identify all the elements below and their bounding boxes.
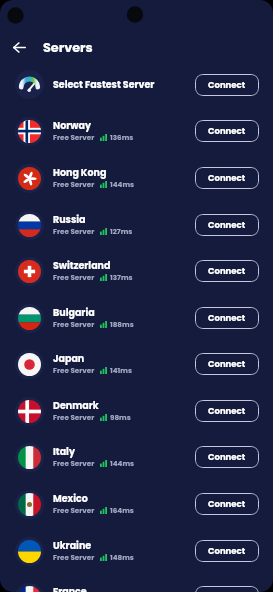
button[interactable]: Connect xyxy=(195,353,259,375)
staticText: Italy xyxy=(53,445,75,458)
staticText: 127ms xyxy=(110,226,133,236)
button[interactable]: Connect xyxy=(195,167,259,189)
staticText: Switzerland xyxy=(53,259,111,272)
staticText: Free Server xyxy=(53,505,95,515)
staticText: Connect xyxy=(208,358,246,370)
button[interactable]: Bulgaria xyxy=(0,294,273,341)
button[interactable]: Switzerland xyxy=(0,247,273,294)
button[interactable]: France xyxy=(0,573,273,592)
staticText: Connect xyxy=(208,79,246,91)
staticText: 141ms xyxy=(110,365,132,375)
button[interactable]: Mexico xyxy=(0,480,273,527)
staticText: Norway xyxy=(53,119,91,132)
staticText: Free Server xyxy=(53,412,95,422)
button[interactable]: Connect xyxy=(195,446,259,468)
button[interactable]: Hong Kong xyxy=(0,154,273,201)
staticText: Select Fastest Server xyxy=(53,78,155,91)
staticText: Ukraine xyxy=(53,539,92,552)
staticText: Free Server xyxy=(53,458,95,468)
button[interactable]: Select Fastest Server xyxy=(0,61,273,108)
staticText: Connect xyxy=(208,125,246,137)
button[interactable]: Connect xyxy=(195,260,259,282)
staticText: Free Server xyxy=(53,552,95,562)
staticText: Connect xyxy=(208,172,246,184)
button[interactable]: Connect xyxy=(195,120,259,142)
staticText: 98ms xyxy=(110,412,131,422)
button[interactable]: Russia xyxy=(0,201,273,248)
button[interactable]: Connect xyxy=(195,307,259,329)
staticText: 137ms xyxy=(110,272,133,282)
button[interactable]: Ukraine xyxy=(0,527,273,574)
button[interactable]: Connect xyxy=(195,74,259,96)
staticText: 144ms xyxy=(110,458,135,468)
staticText: Connect xyxy=(208,451,246,463)
staticText: Free Server xyxy=(53,365,95,375)
staticText: Free Server xyxy=(53,319,95,329)
button[interactable]: Back xyxy=(6,34,32,60)
button[interactable]: Connect xyxy=(195,214,259,236)
staticText: Hong Kong xyxy=(53,166,107,179)
button[interactable]: Norway xyxy=(0,107,273,154)
staticText: 188ms xyxy=(110,319,134,329)
staticText: Connect xyxy=(208,265,246,277)
button[interactable]: Connect xyxy=(195,586,259,592)
staticText: Free Server xyxy=(53,226,95,236)
staticText: Connect xyxy=(208,498,246,510)
staticText: 148ms xyxy=(110,552,134,562)
staticText: Connect xyxy=(208,405,246,417)
staticText: Free Server xyxy=(53,272,95,282)
staticText: Servers xyxy=(43,39,93,57)
button[interactable]: Denmark xyxy=(0,387,273,434)
staticText: Mexico xyxy=(53,492,88,505)
button[interactable]: Italy xyxy=(0,433,273,480)
staticText: 164ms xyxy=(110,505,134,515)
staticText: 136ms xyxy=(110,132,134,142)
staticText: Connect xyxy=(208,312,246,324)
button[interactable]: Connect xyxy=(195,540,259,562)
staticText: Japan xyxy=(53,352,85,365)
staticText: Connect xyxy=(208,545,246,557)
staticText: Free Server xyxy=(53,179,95,189)
button[interactable]: Connect xyxy=(195,400,259,422)
staticText: Russia xyxy=(53,213,86,226)
staticText: Free Server xyxy=(53,132,95,142)
staticText: Connect xyxy=(208,219,246,231)
staticText: Denmark xyxy=(53,399,99,412)
staticText: 144ms xyxy=(110,179,135,189)
button[interactable]: Connect xyxy=(195,493,259,515)
button[interactable]: Japan xyxy=(0,340,273,387)
staticText: Bulgaria xyxy=(53,306,95,319)
staticText: France xyxy=(53,585,87,592)
